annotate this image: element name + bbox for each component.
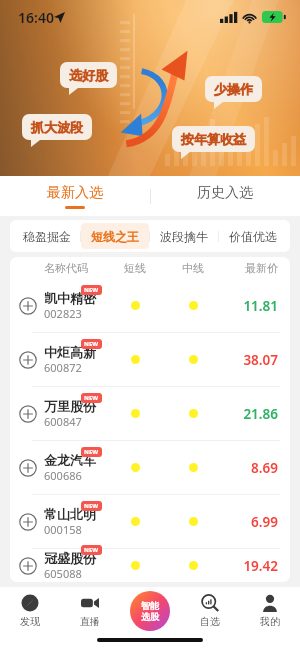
button[interactable]: Add 常山北明 — [10, 495, 290, 548]
staticText: NEW — [84, 286, 99, 294]
staticText: 38.07 — [222, 351, 278, 369]
staticText: 002823 — [44, 306, 82, 321]
button[interactable]: 直播 — [60, 587, 120, 635]
button[interactable]: Add 凯中精密 — [10, 279, 290, 332]
staticText: 名称代码 — [44, 261, 106, 275]
button[interactable]: 最新入选 — [0, 176, 150, 216]
staticText: 少操作 — [214, 81, 253, 97]
staticText: 选好股 — [69, 67, 108, 83]
staticText: 短线之王 — [91, 229, 139, 244]
staticText: NEW — [84, 394, 99, 402]
staticText: 21.86 — [222, 405, 278, 423]
staticText: 发现 — [20, 615, 40, 628]
staticText: 智能 — [141, 600, 159, 611]
button[interactable]: 短线之王 — [81, 223, 149, 249]
button[interactable]: 波段擒牛 — [150, 223, 218, 249]
staticText: 金龙汽车 — [44, 452, 96, 468]
staticText: 中线 — [164, 261, 222, 275]
button[interactable]: 发现 — [0, 587, 60, 635]
button[interactable]: Add 中炬高新 — [19, 351, 37, 369]
staticText: 凯中精密 — [44, 290, 96, 306]
staticText: 11.81 — [222, 297, 278, 315]
staticText: 自选 — [200, 615, 220, 628]
staticText: NEW — [84, 340, 99, 348]
staticText: 8.69 — [222, 459, 278, 477]
button[interactable]: Add 凯中精密 — [19, 297, 37, 315]
button[interactable]: Add 金龙汽车 — [19, 459, 37, 477]
staticText: 19.42 — [222, 557, 278, 575]
staticText: 000158 — [44, 522, 82, 537]
staticText: 万里股份 — [44, 398, 96, 414]
staticText: 冠盛股份 — [44, 550, 96, 566]
staticText: 605088 — [44, 566, 82, 581]
button[interactable]: 自选 — [180, 587, 240, 635]
button[interactable]: 价值优选 — [219, 223, 287, 249]
button[interactable]: 历史入选 — [150, 176, 300, 216]
staticText: 价值优选 — [229, 229, 277, 244]
button[interactable]: 稳盈掘金 — [13, 223, 80, 249]
button[interactable]: Add 万里股份 — [19, 405, 37, 423]
staticText: 600686 — [44, 468, 82, 483]
button[interactable]: Add 中炬高新 — [10, 333, 290, 386]
staticText: 600872 — [44, 360, 82, 375]
staticText: 历史入选 — [197, 184, 253, 202]
staticText: NEW — [84, 546, 99, 554]
button[interactable]: 我的 — [240, 587, 300, 635]
button[interactable]: Add 金龙汽车 — [10, 441, 290, 494]
staticText: 600847 — [44, 414, 82, 429]
staticText: 直播 — [80, 615, 100, 628]
button[interactable]: 智能选股 — [130, 591, 170, 631]
button[interactable]: Add 冠盛股份 — [19, 557, 37, 575]
staticText: 最新入选 — [47, 184, 103, 202]
staticText: 6.99 — [222, 513, 278, 531]
staticText: NEW — [84, 502, 99, 510]
staticText: 选股 — [141, 611, 159, 622]
staticText: 我的 — [260, 615, 280, 628]
staticText: 最新价 — [222, 261, 278, 275]
staticText: 抓大波段 — [31, 119, 83, 135]
staticText: 16:40 — [18, 8, 54, 27]
staticText: 波段擒牛 — [160, 229, 208, 244]
button[interactable]: Add 常山北明 — [19, 513, 37, 531]
button[interactable]: Add 万里股份 — [10, 387, 290, 440]
button[interactable]: Add 冠盛股份 — [10, 549, 290, 582]
staticText: 短线 — [106, 261, 164, 275]
staticText: 常山北明 — [44, 506, 96, 522]
staticText: 稳盈掘金 — [23, 229, 71, 244]
staticText: NEW — [84, 448, 99, 456]
staticText: 中炬高新 — [44, 344, 96, 360]
staticText: 按年算收益 — [181, 131, 246, 147]
